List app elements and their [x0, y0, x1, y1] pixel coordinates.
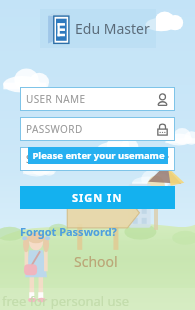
staticText: School: [74, 252, 118, 271]
button[interactable]: Edu Master logo: [46, 13, 150, 44]
staticText: Forgot Password?: [20, 224, 117, 239]
button[interactable]: USER NAME: [20, 87, 175, 111]
staticText: Edu Master: [75, 19, 150, 38]
other: Select role: [158, 154, 169, 165]
button[interactable]: Select Role: [20, 147, 175, 171]
other: User: [156, 93, 169, 106]
button[interactable]: Forgot Password?: [20, 224, 117, 239]
staticText: free for personal use: [2, 292, 130, 310]
other: Password: [156, 123, 169, 136]
button[interactable]: PASSWORD: [20, 117, 175, 141]
staticText: SIGN IN: [72, 190, 123, 205]
staticText: Please enter your usemame: [32, 149, 165, 162]
button[interactable]: SIGN IN: [20, 186, 175, 209]
staticText: USER NAME: [26, 92, 156, 106]
staticText: PASSWORD: [26, 122, 156, 136]
staticText: Select Role: [26, 152, 158, 166]
